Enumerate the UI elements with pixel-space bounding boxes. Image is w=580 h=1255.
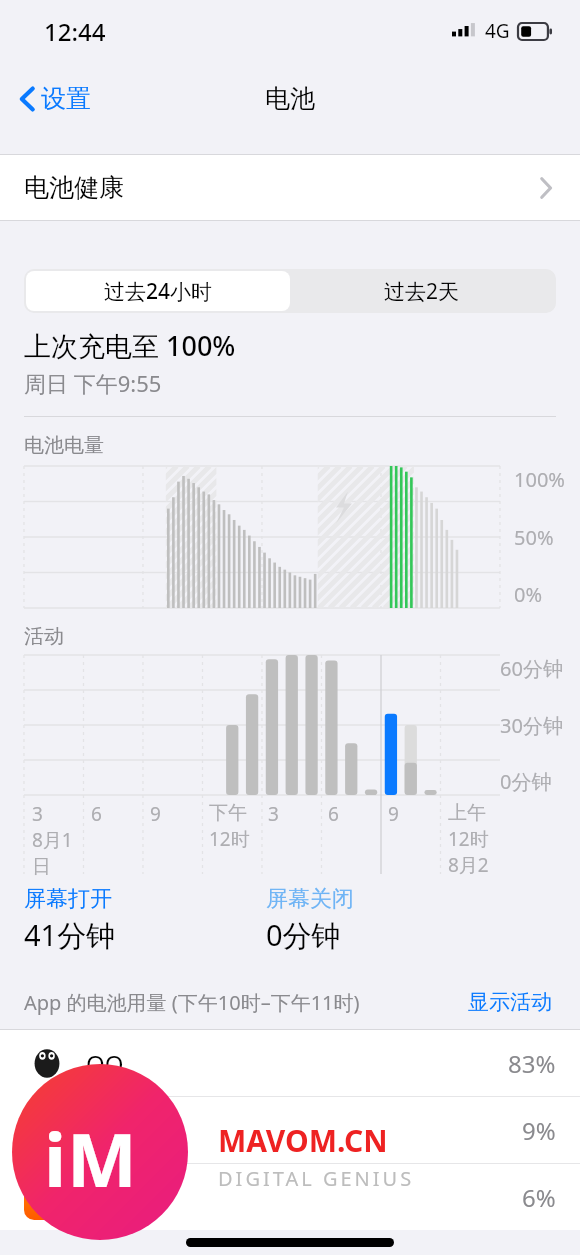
button[interactable]: 淘宝 <box>0 1164 580 1230</box>
staticText: 电池健康 <box>24 172 124 203</box>
button[interactable]: 过去2天 <box>290 271 554 311</box>
staticText: 下午 12时 <box>209 801 250 852</box>
button[interactable]: 设置 <box>16 77 95 120</box>
button[interactable]: QQ <box>0 1030 580 1096</box>
button[interactable]: 显示活动 <box>464 985 556 1019</box>
staticText: 上次充电至 100% <box>24 327 236 364</box>
staticText: App 的电池用量 (下午10时–下午11时) <box>24 989 464 1016</box>
button[interactable]: 过去24小时 <box>26 271 290 311</box>
staticText: 3 <box>268 801 279 827</box>
staticText: 83% <box>508 1047 556 1080</box>
staticText: 9 <box>388 801 399 827</box>
staticText: 9 <box>150 801 161 827</box>
staticText: 6 <box>328 801 339 827</box>
staticText: 8月1日 <box>32 827 83 879</box>
staticText: 电池电量 <box>24 433 104 458</box>
staticText: 41分钟 <box>24 915 116 955</box>
staticText <box>86 1114 522 1147</box>
staticText: 8月2日 <box>448 852 500 881</box>
staticText: QQ <box>86 1047 508 1080</box>
staticText: 0分钟 <box>266 915 341 955</box>
staticText: 设置 <box>41 83 91 114</box>
staticText: 活动 <box>24 624 64 649</box>
staticText: 12:44 <box>44 15 106 48</box>
staticText: 6 <box>91 801 102 827</box>
staticText: 6% <box>522 1181 556 1214</box>
staticText: 过去2天 <box>384 277 460 306</box>
button[interactable]: 电池健康 <box>0 155 580 220</box>
staticText: 0% <box>514 581 543 608</box>
staticText: 屏幕关闭 <box>266 885 354 913</box>
staticText: 0分钟 <box>500 768 552 795</box>
staticText: 4G <box>485 18 510 44</box>
staticText: 60分钟 <box>500 655 563 682</box>
staticText: 周日 下午9:55 <box>24 368 162 398</box>
staticText: 50% <box>514 524 554 551</box>
staticText: 上午 12时 <box>448 801 489 852</box>
staticText: 电池 <box>265 83 315 114</box>
staticText: M <box>67 1108 137 1209</box>
staticText: 屏幕打开 <box>24 885 112 913</box>
staticText: 淘宝 <box>86 1182 522 1212</box>
staticText: 30分钟 <box>500 712 563 739</box>
staticText: i <box>44 1108 67 1209</box>
button[interactable]: 9% <box>0 1097 580 1163</box>
staticText: 9% <box>522 1114 556 1147</box>
staticText: DIGITAL GENIUS <box>218 1165 415 1192</box>
staticText: 100% <box>514 466 565 493</box>
staticText: MAVOM.CN <box>218 1120 388 1161</box>
staticText: 显示活动 <box>468 989 552 1015</box>
staticText: 过去24小时 <box>104 277 213 306</box>
staticText: 3 <box>32 801 43 827</box>
